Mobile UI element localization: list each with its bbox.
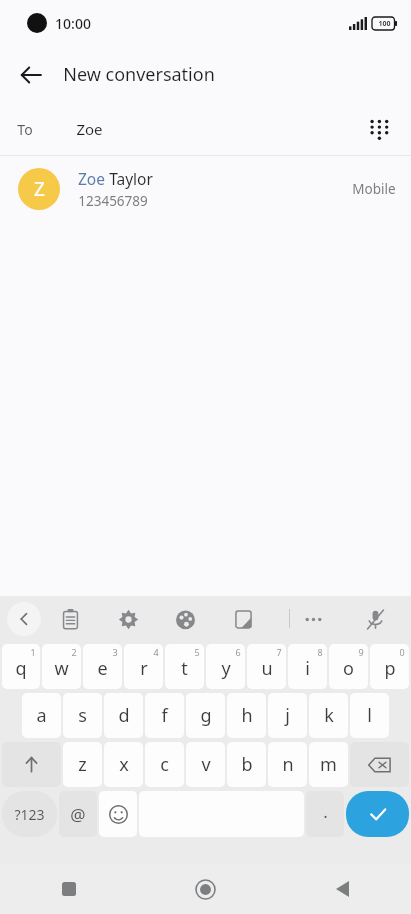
staticText: e [97,656,108,681]
staticText: 1 [30,646,36,658]
staticText: 4 [153,646,159,658]
staticText: r [140,656,148,681]
staticText: l [367,703,372,728]
staticText: Z [34,176,45,202]
staticText: q [15,656,27,681]
staticText: 123456789 [78,192,148,210]
staticText: u [261,656,273,681]
button[interactable]: Shift [2,742,61,787]
button[interactable]: @ [59,791,97,837]
button[interactable]: m [309,742,348,787]
staticText: j [285,703,290,728]
staticText: o [343,656,354,681]
staticText: p [384,656,396,681]
staticText: 8 [317,646,323,658]
button[interactable]: o [329,644,368,689]
staticText: d [118,703,130,728]
button[interactable]: s [63,693,102,738]
button[interactable]: t [165,644,204,689]
button[interactable]: Resize keyboard [226,602,260,636]
staticText: Zoe [76,119,103,139]
button[interactable]: y [206,644,245,689]
staticText: g [200,703,212,728]
button[interactable]: Clipboard [53,602,87,636]
button[interactable]: k [309,693,348,738]
button[interactable]: Backspace [350,742,409,787]
staticText: h [241,703,253,728]
button[interactable]: w [42,644,81,689]
button[interactable]: n [268,742,307,787]
staticText: m [320,752,337,777]
button[interactable]: e [83,644,122,689]
staticText: Zoe [78,168,105,189]
staticText: 2 [71,646,77,658]
staticText: k [324,703,334,728]
staticText: c [160,752,169,777]
button[interactable]: p [370,644,409,689]
button[interactable]: Collapse toolbar [7,602,41,636]
button[interactable]: a [22,693,61,738]
staticText: a [36,703,47,728]
staticText: f [161,703,168,728]
button[interactable]: q [2,644,40,689]
staticText: . [323,800,328,823]
button[interactable]: More options [296,602,330,636]
button[interactable]: l [350,693,389,738]
button[interactable]: Back [12,56,50,94]
button[interactable]: Home [137,864,274,914]
staticText: z [78,752,87,777]
staticText: v [201,752,211,777]
staticText: @ [70,803,86,826]
button[interactable]: f [145,693,184,738]
button[interactable]: Recents [0,864,137,914]
staticText: To [17,120,33,139]
button[interactable]: ?123 [2,791,57,837]
staticText: y [221,656,231,681]
button[interactable]: x [104,742,143,787]
button[interactable]: Settings [111,602,145,636]
button[interactable]: j [268,693,307,738]
button[interactable]: z [63,742,102,787]
staticText: 6 [235,646,241,658]
staticText: New conversation [63,62,215,87]
button[interactable]: . [306,791,344,837]
staticText: ?123 [14,805,45,824]
button[interactable]: u [247,644,286,689]
button[interactable]: Voice input off [358,602,392,636]
button[interactable]: v [186,742,225,787]
staticText: 7 [276,646,282,658]
staticText: 0 [399,646,405,658]
staticText: n [282,752,294,777]
staticText: s [78,703,87,728]
button[interactable]: To [0,103,411,155]
button[interactable]: c [145,742,184,787]
staticText: i [305,656,310,681]
button[interactable]: Send [346,791,409,837]
button[interactable]: Dialpad [361,111,397,147]
staticText: Mobile [352,180,396,198]
button[interactable]: h [227,693,266,738]
button[interactable]: i [288,644,327,689]
button[interactable]: r [124,644,163,689]
staticText: x [119,752,129,777]
button[interactable]: b [227,742,266,787]
staticText: Taylor [105,168,153,189]
staticText: 100 [378,19,391,29]
staticText: w [54,656,69,681]
staticText: 10:00 [55,14,91,33]
button[interactable]: Back [274,864,411,914]
button[interactable]: Z [0,156,411,222]
staticText: 5 [194,646,200,658]
staticText: 9 [358,646,364,658]
button[interactable]: Emoji [99,791,137,837]
staticText: t [181,656,188,681]
staticText: b [241,752,253,777]
button[interactable]: d [104,693,143,738]
button[interactable]: Theme [168,602,202,636]
staticText: 3 [112,646,118,658]
button[interactable]: g [186,693,225,738]
